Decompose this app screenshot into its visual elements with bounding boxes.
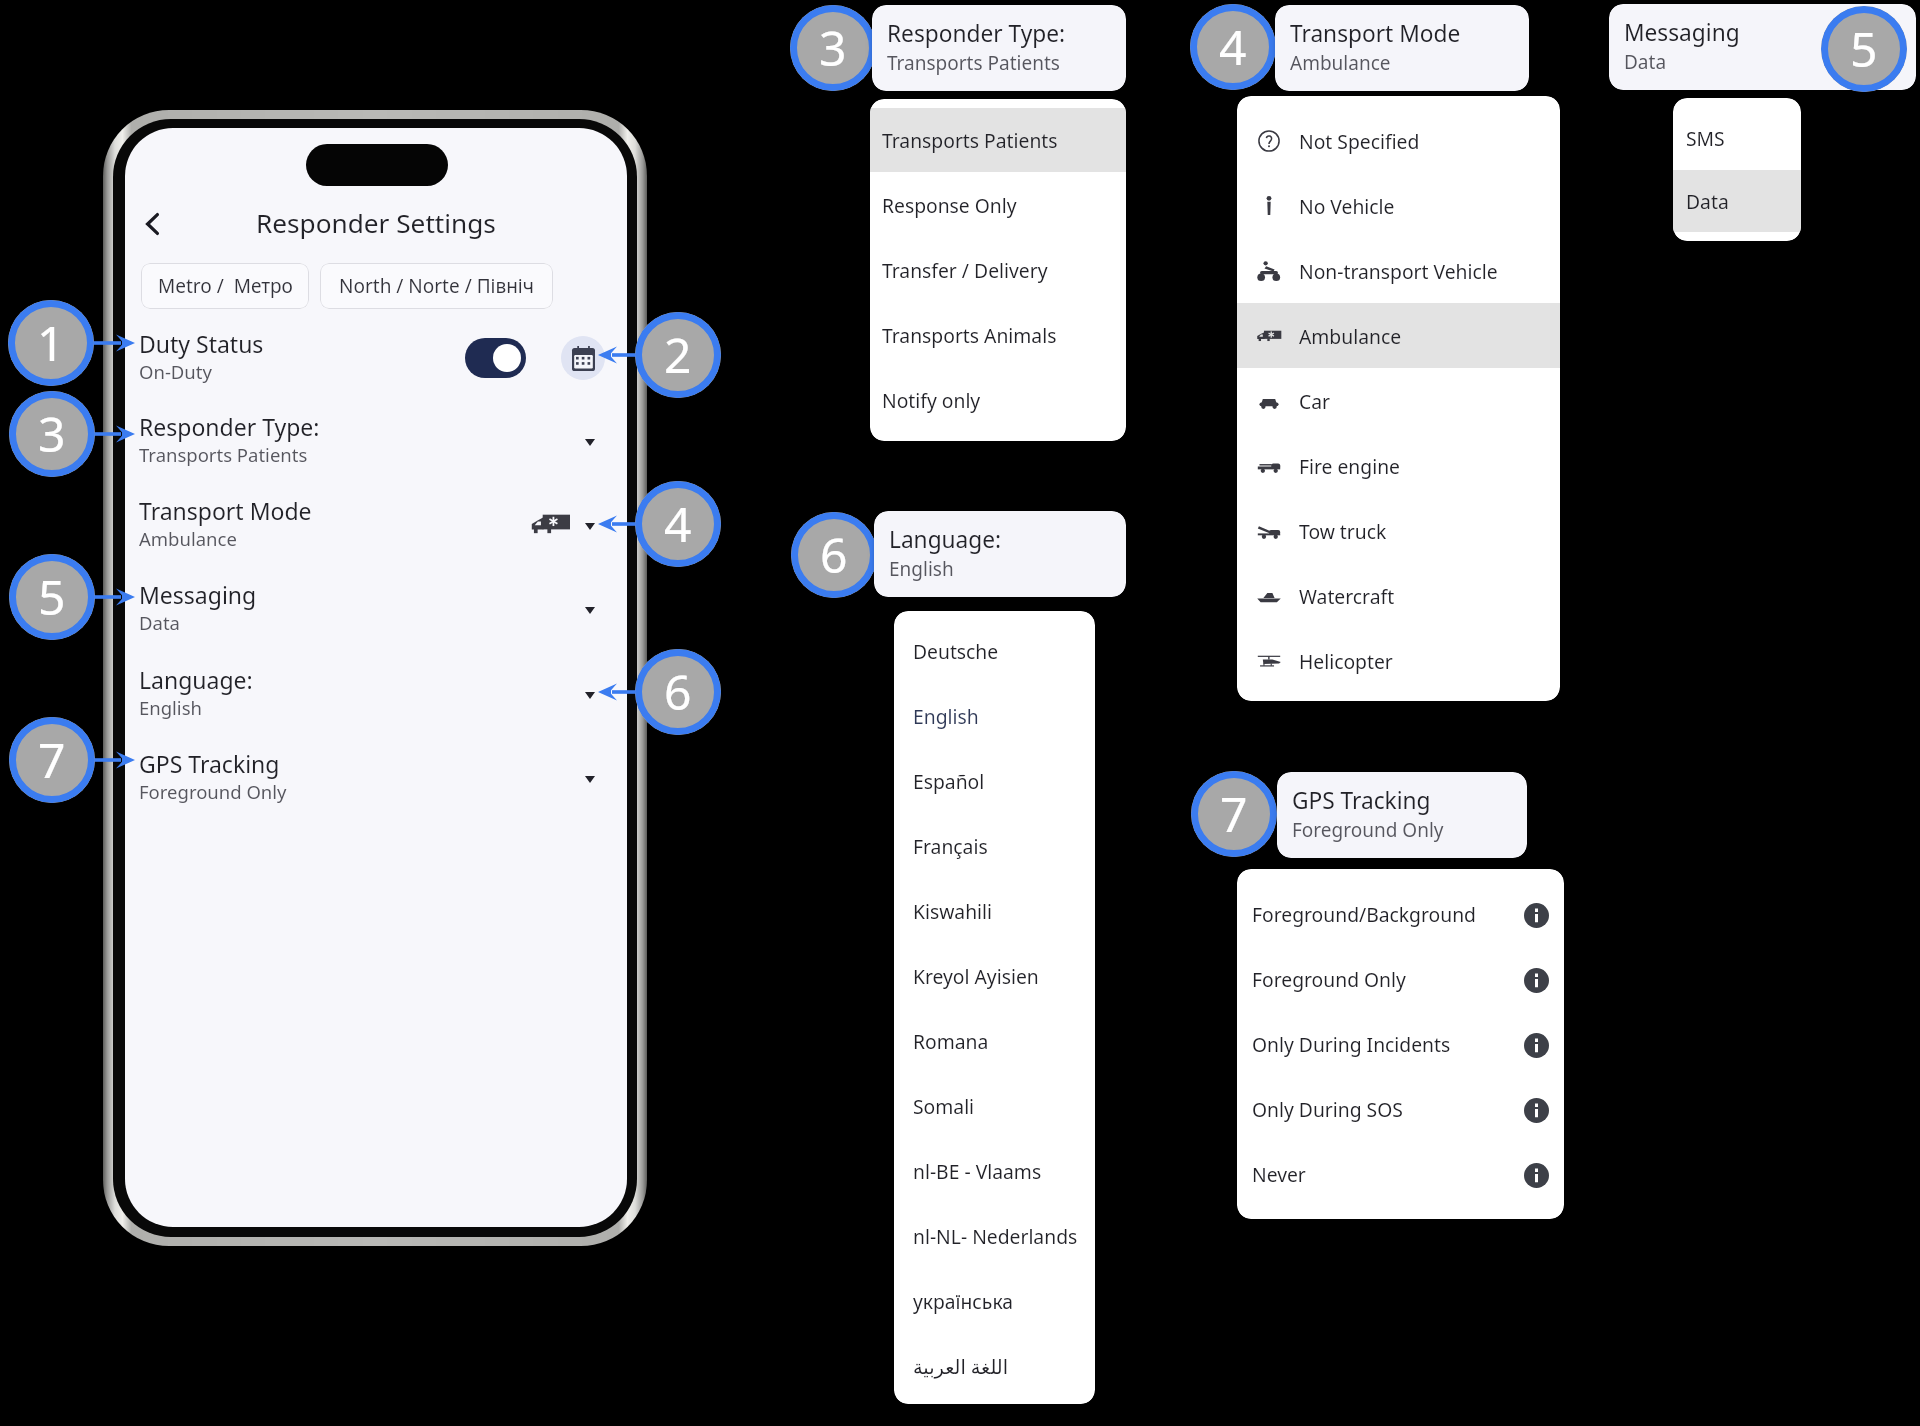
staticText: اللغة العربية <box>913 1353 1009 1379</box>
button[interactable]: Only During SOS <box>1237 1077 1564 1141</box>
staticText: Watercraft <box>1299 583 1395 609</box>
button[interactable]: Watercraft <box>1237 563 1560 628</box>
button[interactable]: GPS Tracking <box>1277 772 1527 858</box>
button[interactable]: Calendar <box>561 336 605 380</box>
staticText: Français <box>913 833 988 859</box>
button[interactable]: Metro / Метро <box>141 263 309 309</box>
button[interactable]: Responder Type: <box>125 388 627 472</box>
staticText: Transport Mode <box>139 495 312 526</box>
button[interactable]: Transports Patients <box>870 108 1126 172</box>
staticText: Transport Mode <box>1290 18 1461 49</box>
staticText: Only During SOS <box>1252 1096 1403 1122</box>
button[interactable]: Info <box>1524 903 1549 928</box>
button[interactable]: Response Only <box>870 173 1126 237</box>
button[interactable]: No Vehicle <box>1237 173 1560 238</box>
button[interactable]: Duty Status <box>125 305 627 389</box>
button[interactable]: Info <box>1524 968 1549 993</box>
button[interactable]: Never <box>1237 1142 1564 1206</box>
button[interactable]: Language: <box>874 511 1126 597</box>
button[interactable]: Transports Animals <box>870 303 1126 367</box>
staticText: 7 <box>1220 781 1248 846</box>
button[interactable]: українська <box>894 1269 1095 1333</box>
button[interactable]: Romana <box>894 1009 1095 1073</box>
button[interactable]: Responder Type: <box>872 5 1126 91</box>
button[interactable]: Kiswahili <box>894 879 1095 943</box>
button[interactable]: Info <box>1524 1098 1549 1123</box>
button[interactable]: Language: <box>125 641 627 725</box>
staticText: 7 <box>38 727 66 792</box>
staticText: Never <box>1252 1161 1306 1187</box>
staticText: nl-BE - Vlaams <box>913 1158 1042 1184</box>
staticText: 2 <box>664 322 692 387</box>
button[interactable]: Kreyol Ayisien <box>894 944 1095 1008</box>
staticText: Ambulance <box>1299 323 1402 349</box>
button[interactable]: nl-NL- Nederlands <box>894 1204 1095 1268</box>
button[interactable]: Info <box>1524 1033 1549 1058</box>
button[interactable]: Notify only <box>870 368 1126 432</box>
staticText: Kreyol Ayisien <box>913 963 1039 989</box>
button[interactable] <box>465 338 526 378</box>
staticText: Fire engine <box>1299 453 1400 479</box>
staticText: Data <box>1624 49 1667 75</box>
staticText: Non-transport Vehicle <box>1299 258 1498 284</box>
staticText: 5 <box>1850 16 1878 81</box>
staticText: Foreground Only <box>1252 966 1406 992</box>
staticText: No Vehicle <box>1299 193 1395 219</box>
staticText: Transports Patients <box>139 442 308 467</box>
staticText: Messaging <box>1624 17 1740 48</box>
button[interactable]: Expand <box>579 431 601 453</box>
staticText: Español <box>913 768 985 794</box>
button[interactable]: Español <box>894 749 1095 813</box>
button[interactable]: Tow truck <box>1237 498 1560 563</box>
button[interactable]: Helicopter <box>1237 628 1560 693</box>
button[interactable]: Expand <box>579 599 601 621</box>
button[interactable]: Data <box>1673 170 1801 232</box>
button[interactable]: Transport Mode <box>125 472 627 556</box>
staticText: Data <box>139 610 180 635</box>
staticText: Responder Type: <box>139 411 320 442</box>
button[interactable]: Fire engine <box>1237 433 1560 498</box>
button[interactable]: Messaging <box>125 556 627 640</box>
staticText: Metro / Метро <box>158 273 293 299</box>
staticText: GPS Tracking <box>139 748 280 779</box>
staticText: Transfer / Delivery <box>882 257 1048 283</box>
staticText: English <box>889 556 954 582</box>
button[interactable]: North / Norte / Північ <box>320 263 553 309</box>
staticText: Tow truck <box>1299 518 1387 544</box>
button[interactable]: Car <box>1237 368 1560 433</box>
button[interactable]: Not Specified <box>1237 108 1560 173</box>
button[interactable]: Expand <box>579 768 601 790</box>
button[interactable]: SMS <box>1673 107 1801 169</box>
button[interactable]: English <box>894 684 1095 748</box>
button[interactable]: nl-BE - Vlaams <box>894 1139 1095 1203</box>
button[interactable]: Info <box>1524 1163 1549 1188</box>
button[interactable]: Ambulance <box>1237 303 1560 368</box>
staticText: SMS <box>1686 125 1725 151</box>
staticText: Ambulance <box>1290 50 1391 76</box>
button[interactable]: Expand <box>579 684 601 706</box>
staticText: GPS Tracking <box>1292 785 1431 816</box>
staticText: nl-NL- Nederlands <box>913 1223 1078 1249</box>
staticText: Romana <box>913 1028 989 1054</box>
button[interactable]: Français <box>894 814 1095 878</box>
button[interactable]: Only During Incidents <box>1237 1012 1564 1076</box>
button[interactable]: Messaging <box>1609 4 1916 90</box>
staticText: Transports Patients <box>882 127 1058 153</box>
button[interactable]: Foreground Only <box>1237 947 1564 1011</box>
button[interactable]: Expand <box>579 515 601 537</box>
button[interactable]: Non-transport Vehicle <box>1237 238 1560 303</box>
button[interactable]: GPS Tracking <box>125 725 627 809</box>
button[interactable]: Foreground/Background <box>1237 882 1564 946</box>
button[interactable]: اللغة العربية <box>894 1334 1095 1398</box>
staticText: Foreground Only <box>139 779 287 804</box>
button[interactable]: Deutsche <box>894 619 1095 683</box>
staticText: 5 <box>38 564 66 629</box>
staticText: Ambulance <box>139 526 237 551</box>
button[interactable]: Transport Mode <box>1275 5 1529 91</box>
button[interactable]: Somali <box>894 1074 1095 1138</box>
button[interactable]: Transfer / Delivery <box>870 238 1126 302</box>
staticText: українська <box>913 1288 1013 1314</box>
staticText: Language: <box>889 524 1002 555</box>
button[interactable]: Back <box>130 202 174 246</box>
staticText: North / Norte / Північ <box>339 273 534 299</box>
